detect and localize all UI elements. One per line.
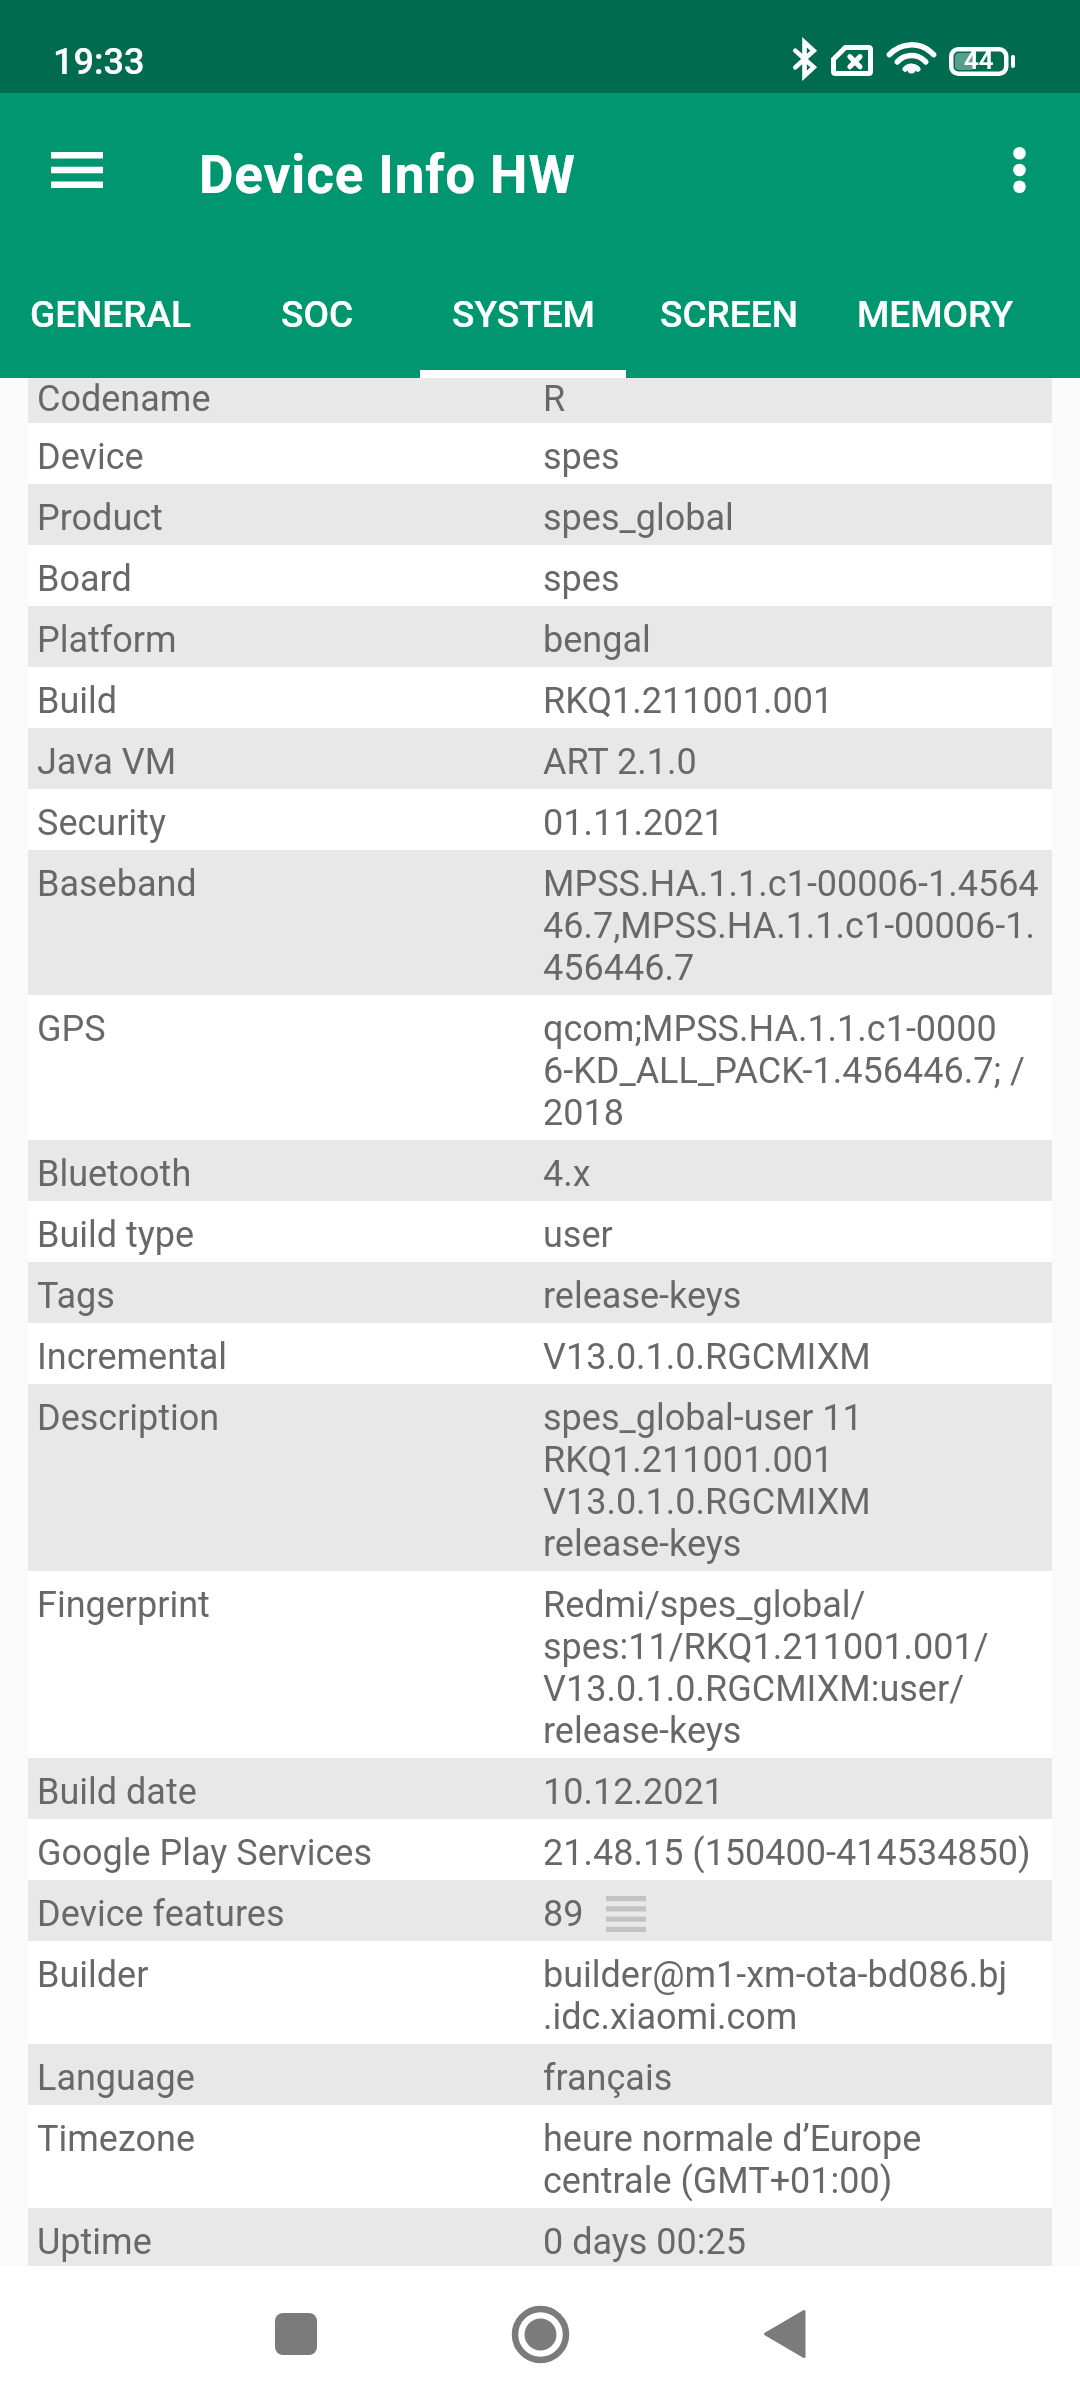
staticText: Build [37, 680, 118, 722]
button[interactable]: Google Play Services [28, 1819, 1052, 1880]
staticText: 4.x [543, 1153, 591, 1195]
staticText: spes [543, 436, 620, 478]
button[interactable]: Baseband [28, 850, 1052, 995]
button[interactable]: Product [28, 484, 1052, 545]
button[interactable]: Build date [28, 1758, 1052, 1819]
button[interactable]: Uptime [28, 2208, 1052, 2266]
staticText: SYSTEM [452, 293, 595, 336]
staticText: GENERAL [30, 293, 192, 336]
staticText: user [543, 1214, 613, 1256]
staticText: Builder [37, 1954, 149, 1996]
staticText: Board [37, 558, 132, 600]
button[interactable]: Timezone [28, 2105, 1052, 2208]
button[interactable]: SOC [214, 260, 420, 378]
staticText: qcom;MPSS.HA.1.1.c1-0000 [543, 1008, 997, 1050]
staticText: release-keys [543, 1710, 742, 1752]
staticText: MEMORY [857, 293, 1014, 336]
button[interactable]: Java VM [28, 728, 1052, 789]
staticText: Google Play Services [37, 1832, 373, 1874]
staticText: Product [37, 497, 163, 539]
button[interactable]: Back [729, 2279, 839, 2389]
staticText: 10.12.2021 [543, 1771, 724, 1813]
button[interactable]: Description [28, 1384, 1052, 1571]
staticText: centrale (GMT+01:00) [543, 2160, 893, 2202]
button[interactable]: Board [28, 545, 1052, 606]
button[interactable]: Bluetooth [28, 1140, 1052, 1201]
staticText: français [543, 2057, 673, 2099]
staticText: 89 [543, 1893, 584, 1935]
staticText: 2018 [543, 1092, 624, 1134]
staticText: GPS [37, 1008, 106, 1050]
staticText: spes_global [543, 497, 734, 539]
button[interactable]: Security [28, 789, 1052, 850]
staticText: V13.0.1.0.RGCMIXM [543, 1481, 871, 1523]
button[interactable]: Recent apps [241, 2279, 351, 2389]
button[interactable]: Build type [28, 1201, 1052, 1262]
staticText: R [543, 378, 566, 420]
staticText: Device features [37, 1893, 285, 1935]
button[interactable]: SYSTEM [420, 260, 626, 378]
button[interactable]: Device features [28, 1880, 1052, 1941]
staticText: Bluetooth [37, 1153, 192, 1195]
staticText: MPSS.HA.1.1.c1-00006-1.4564 [543, 863, 1039, 905]
staticText: SCREEN [660, 293, 798, 336]
staticText: bengal [543, 619, 651, 661]
staticText: Device [37, 436, 144, 478]
staticText: V13.0.1.0.RGCMIXM:user/ [543, 1668, 964, 1710]
staticText: 01.11.2021 [543, 802, 724, 844]
staticText: 0 days 00:25 [543, 2221, 746, 2263]
staticText: heure normale d’Europe [543, 2118, 922, 2160]
button[interactable]: Incremental [28, 1323, 1052, 1384]
staticText: Description [37, 1397, 220, 1439]
button[interactable]: GPS [28, 995, 1052, 1140]
staticText: Redmi/spes_global/ [543, 1584, 866, 1626]
staticText: 6-KD_ALL_PACK-1.456446.7; / [543, 1050, 1025, 1092]
button[interactable]: GENERAL [8, 260, 214, 378]
staticText: Build type [37, 1214, 195, 1256]
staticText: 19:33 [53, 41, 145, 83]
staticText: V13.0.1.0.RGCMIXM [543, 1336, 871, 1378]
button[interactable]: Fingerprint [28, 1571, 1052, 1758]
button[interactable]: Platform [28, 606, 1052, 667]
staticText: Device Info HW [199, 144, 576, 206]
staticText: 46.7,MPSS.HA.1.1.c1-00006-1. [543, 905, 1035, 947]
button[interactable]: MEMORY [832, 260, 1038, 378]
button[interactable]: Language [28, 2044, 1052, 2105]
button[interactable]: Home [485, 2279, 595, 2389]
staticText: spes:11/RKQ1.211001.001/ [543, 1626, 989, 1668]
staticText: ART 2.1.0 [543, 741, 697, 783]
staticText: release-keys [543, 1523, 742, 1565]
staticText: spes [543, 558, 620, 600]
staticText: Java VM [37, 741, 177, 783]
staticText: release-keys [543, 1275, 742, 1317]
staticText: Timezone [37, 2118, 195, 2160]
button[interactable]: SCREEN [626, 260, 832, 378]
staticText: Uptime [37, 2221, 152, 2263]
staticText: RKQ1.211001.001 [543, 1439, 834, 1481]
staticText: SOC [281, 293, 354, 336]
button[interactable]: Open navigation menu [23, 116, 131, 224]
staticText: Build date [37, 1771, 197, 1813]
staticText: Tags [37, 1275, 115, 1317]
staticText: spes_global-user 11 [543, 1397, 863, 1439]
staticText: builder@m1-xm-ota-bd086.bj [543, 1954, 1007, 1996]
staticText: Security [37, 802, 166, 844]
button[interactable]: More options [969, 120, 1069, 220]
staticText: 21.48.15 (150400-414534850) [543, 1832, 1031, 1874]
staticText: RKQ1.211001.001 [543, 680, 834, 722]
staticText: Incremental [37, 1336, 228, 1378]
button[interactable]: Build [28, 667, 1052, 728]
staticText: .idc.xiaomi.com [543, 1996, 798, 2038]
staticText: 456446.7 [543, 947, 695, 989]
button[interactable]: Builder [28, 1941, 1052, 2044]
button[interactable]: Tags [28, 1262, 1052, 1323]
staticText: Fingerprint [37, 1584, 210, 1626]
staticText: Platform [37, 619, 177, 661]
staticText: 44 [964, 45, 994, 75]
button[interactable]: Codename [28, 378, 1052, 423]
staticText: Language [37, 2057, 195, 2099]
staticText: Baseband [37, 863, 197, 905]
staticText: Codename [37, 378, 211, 420]
button[interactable]: Device [28, 423, 1052, 484]
